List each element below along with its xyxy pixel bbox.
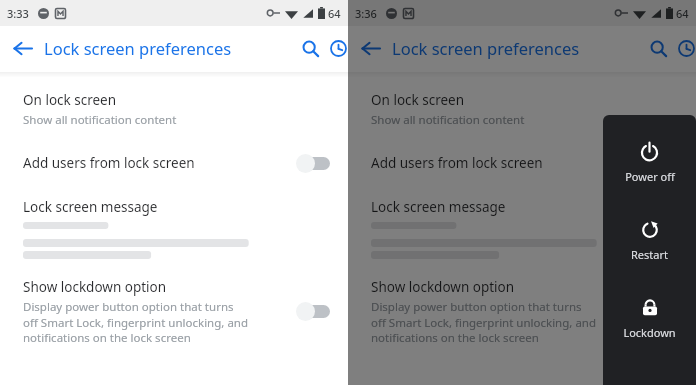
- staticText: Lockdown: [623, 325, 676, 340]
- staticText: On lock screen: [23, 91, 117, 109]
- staticText: Add users from lock screen: [23, 154, 195, 172]
- button[interactable]: Toggle Add users from lock screen: [296, 150, 336, 176]
- staticText: Show lockdown option: [23, 278, 167, 296]
- button[interactable]: On lock screen: [0, 91, 348, 128]
- button[interactable]: Add users from lock screen: [0, 150, 348, 176]
- button[interactable]: Back: [348, 26, 392, 70]
- button[interactable]: Power off: [603, 139, 696, 186]
- staticText: Show lockdown option: [371, 278, 515, 296]
- button[interactable]: Toggle Show lockdown option: [296, 298, 336, 324]
- button[interactable]: Add users from lock screen: [348, 150, 696, 176]
- staticText: Show all notification content: [23, 112, 177, 128]
- staticText: 64: [676, 6, 689, 21]
- staticText: Display power button option that turns o…: [371, 299, 597, 345]
- staticText: 3:36: [355, 6, 377, 21]
- button[interactable]: Search: [638, 28, 678, 68]
- button[interactable]: Back: [0, 26, 44, 70]
- staticText: On lock screen: [371, 91, 465, 109]
- staticText: Show all notification content: [371, 112, 525, 128]
- staticText: 3:33: [7, 6, 29, 21]
- button[interactable]: Restart: [603, 218, 696, 264]
- staticText: 64: [328, 6, 341, 21]
- staticText: Lock screen preferences: [392, 37, 580, 59]
- button[interactable]: Show lockdown option: [348, 278, 696, 345]
- staticText: Lock screen preferences: [44, 37, 232, 59]
- staticText: Lock screen message: [23, 198, 158, 216]
- button[interactable]: Help: [678, 28, 696, 68]
- staticText: Lock screen message: [371, 198, 506, 216]
- button[interactable]: Lock screen message: [0, 198, 348, 260]
- button[interactable]: Lock screen message: [348, 198, 696, 260]
- staticText: Restart: [631, 247, 668, 262]
- staticText: Add users from lock screen: [371, 154, 543, 172]
- button[interactable]: On lock screen: [348, 91, 696, 128]
- button[interactable]: Toggle Show lockdown option: [644, 298, 684, 324]
- button[interactable]: Help: [330, 28, 348, 68]
- staticText: Display power button option that turns o…: [23, 299, 249, 345]
- button[interactable]: Toggle Add users from lock screen: [644, 150, 684, 176]
- button[interactable]: Lockdown: [603, 296, 696, 342]
- button[interactable]: Show lockdown option: [0, 278, 348, 345]
- button[interactable]: Search: [290, 28, 330, 68]
- staticText: Power off: [625, 169, 675, 184]
